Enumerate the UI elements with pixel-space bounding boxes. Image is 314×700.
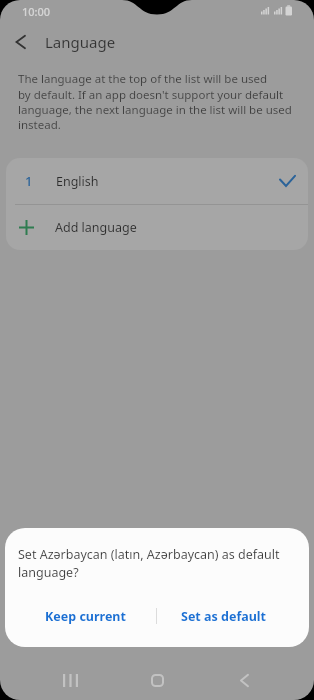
- staticText: 1: [25, 172, 33, 190]
- button[interactable]: [214, 660, 274, 700]
- staticText: Add language: [55, 219, 137, 236]
- button[interactable]: Add language: [6, 205, 308, 250]
- button[interactable]: Keep current: [5, 600, 156, 632]
- staticText: The language at the top of the list will…: [18, 71, 292, 132]
- button[interactable]: [127, 660, 187, 700]
- button[interactable]: Language: [0, 26, 314, 58]
- button[interactable]: [40, 660, 100, 700]
- staticText: English: [56, 173, 99, 190]
- staticText: 10:00: [22, 4, 51, 19]
- staticText: Set as default: [181, 608, 267, 625]
- button[interactable]: Set as default: [157, 600, 309, 632]
- staticText: Keep current: [45, 608, 126, 625]
- staticText: Language: [45, 32, 116, 52]
- staticText: Set Azərbaycan (latın, Azərbaycan) as de…: [18, 546, 280, 581]
- button[interactable]: 1: [6, 158, 308, 204]
